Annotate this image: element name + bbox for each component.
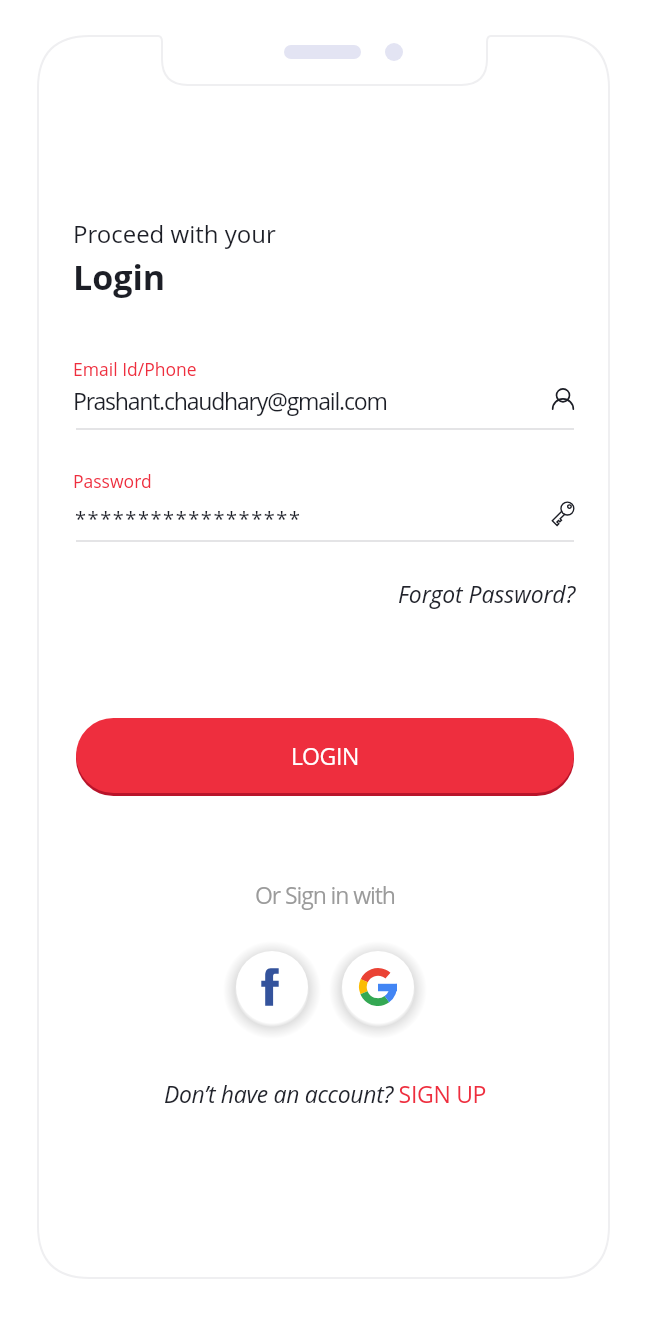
staticText: Proceed with your — [73, 217, 276, 250]
staticText: ****************** — [75, 505, 302, 532]
staticText: Login — [73, 254, 166, 300]
staticText: Or Sign in with — [255, 879, 395, 910]
button[interactable]: Show password — [537, 487, 589, 539]
button[interactable]: Forgot Password? — [398, 578, 576, 609]
button[interactable]: LOGIN — [76, 718, 574, 793]
staticText: Password — [73, 469, 152, 493]
button[interactable]: Account — [537, 373, 589, 425]
staticText: Prashant.chaudhary@gmail.com — [73, 385, 387, 416]
button[interactable]: Sign in with Facebook — [236, 951, 308, 1023]
staticText: Email Id/Phone — [73, 357, 197, 381]
staticText: LOGIN — [291, 740, 359, 771]
button[interactable]: Sign in with Google — [342, 951, 414, 1023]
staticText: Don’t have an account? SIGN UP — [164, 1078, 487, 1109]
button[interactable]: Don’t have an account? SIGN UP — [164, 1078, 487, 1109]
